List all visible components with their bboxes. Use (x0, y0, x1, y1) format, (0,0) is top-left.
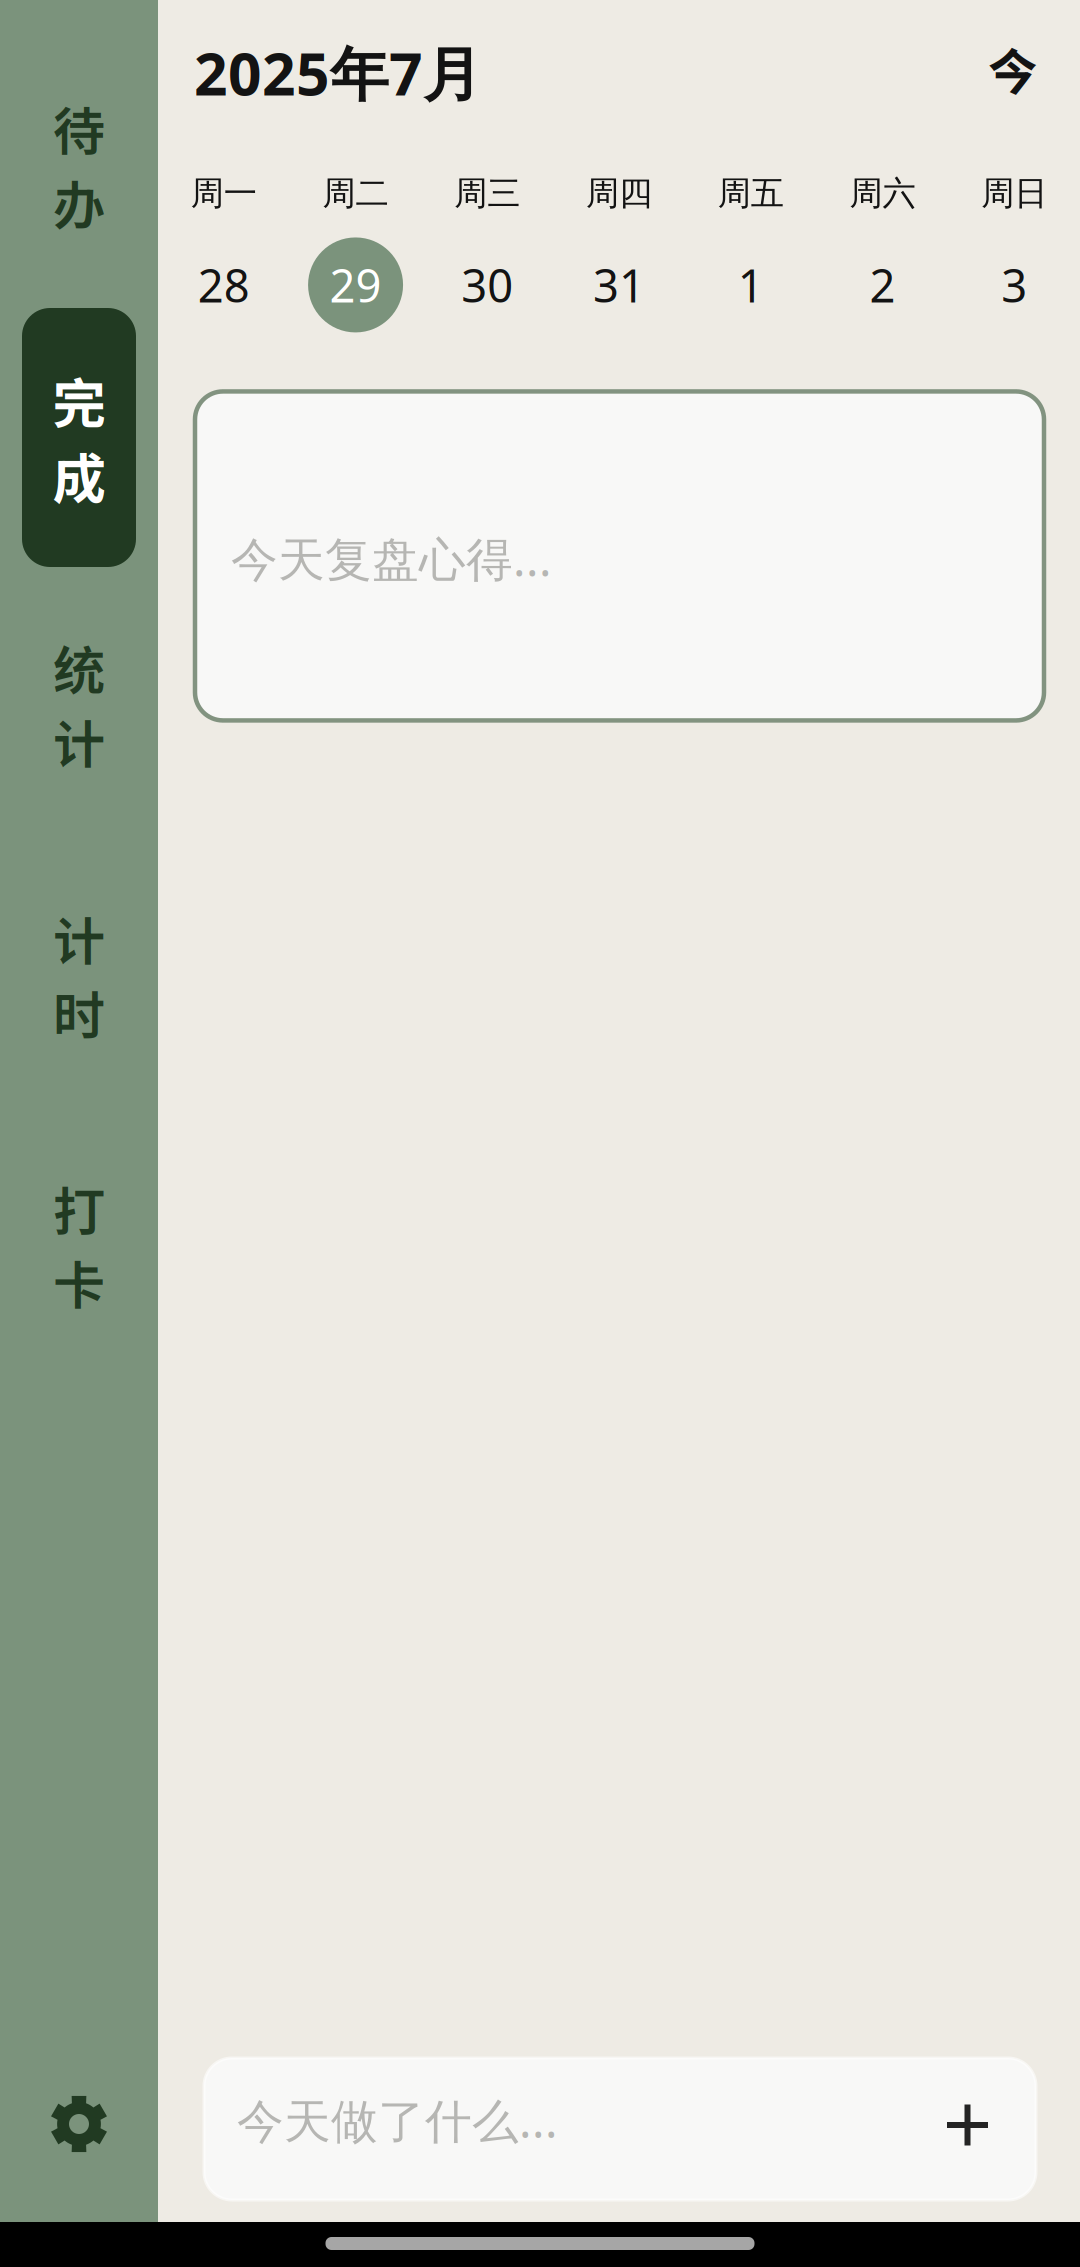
staticText: 周四 (586, 173, 652, 214)
button[interactable]: 今天做了什么... (204, 2058, 1036, 2200)
staticText: 30 (461, 255, 513, 315)
button[interactable]: 周五 (685, 170, 817, 332)
button[interactable]: 周四 (553, 170, 685, 332)
staticText: 待 (53, 90, 105, 166)
staticText: 今天复盘心得... (231, 527, 552, 589)
staticText: 周六 (849, 173, 915, 214)
staticText: 31 (593, 255, 645, 315)
staticText: 周一 (191, 173, 257, 214)
staticText: 29 (330, 255, 382, 315)
button[interactable]: 计 (0, 901, 158, 1049)
staticText: 1 (738, 255, 764, 315)
staticText: 周五 (718, 173, 784, 214)
button[interactable]: Settings (0, 2074, 158, 2174)
staticText: 完 (52, 361, 105, 439)
staticText: 计 (53, 703, 105, 779)
staticText: 办 (53, 164, 105, 240)
button[interactable]: 统 (0, 630, 158, 778)
staticText: 卡 (53, 1244, 105, 1320)
staticText: 周三 (454, 173, 520, 214)
staticText: 成 (52, 436, 105, 514)
staticText: 统 (53, 629, 105, 705)
button[interactable]: 今 (980, 34, 1045, 121)
button[interactable]: 周二 (290, 170, 421, 332)
staticText: 周日 (981, 173, 1047, 214)
button[interactable]: 完 (22, 308, 136, 567)
button[interactable]: 周三 (421, 170, 553, 332)
button[interactable]: 周一 (158, 170, 290, 332)
staticText: 计 (53, 900, 105, 976)
staticText: 周二 (323, 173, 389, 214)
staticText: 打 (53, 1170, 105, 1246)
button[interactable]: 周六 (817, 170, 948, 332)
button[interactable]: 打 (0, 1171, 158, 1319)
staticText: 今 (988, 33, 1037, 104)
staticText: 时 (53, 974, 105, 1050)
button[interactable]: 今天复盘心得... (195, 391, 1044, 720)
button[interactable]: 待 (0, 91, 158, 239)
button[interactable]: 周日 (948, 170, 1080, 332)
staticText: 3 (1001, 255, 1027, 315)
staticText: 2025年7月 (194, 34, 482, 112)
staticText: 28 (198, 255, 250, 315)
staticText: 今天做了什么... (237, 2089, 558, 2151)
staticText: 2 (869, 255, 895, 315)
